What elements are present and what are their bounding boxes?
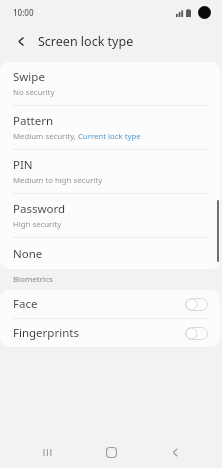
button[interactable]: Face (0, 290, 220, 318)
staticText: Screen lock type (38, 33, 134, 50)
staticText: 10:00 (13, 7, 34, 18)
staticText: PIN (13, 157, 33, 173)
staticText: None (13, 246, 43, 262)
button[interactable]: Back (158, 436, 192, 468)
staticText: Password (13, 201, 66, 217)
button[interactable]: Pattern (0, 106, 220, 149)
staticText: High security (13, 219, 62, 230)
staticText: Fingerprints (13, 325, 185, 341)
button[interactable]: Fingerprints (0, 319, 220, 347)
staticText: Pattern (13, 113, 54, 129)
button[interactable]: PIN (0, 150, 220, 193)
button[interactable]: Back (11, 31, 31, 51)
button[interactable]: Home (94, 436, 128, 468)
staticText: No security (13, 87, 55, 98)
button[interactable]: Swipe (0, 62, 220, 105)
button[interactable]: Password (0, 194, 220, 237)
button[interactable]: Recent apps (30, 436, 64, 468)
button[interactable]: None (0, 238, 220, 269)
staticText: Medium security, Current lock type (13, 131, 141, 142)
staticText: Biometrics (13, 274, 53, 285)
staticText: Swipe (13, 69, 45, 85)
staticText: Face (13, 296, 185, 312)
staticText: Medium to high security (13, 175, 103, 186)
